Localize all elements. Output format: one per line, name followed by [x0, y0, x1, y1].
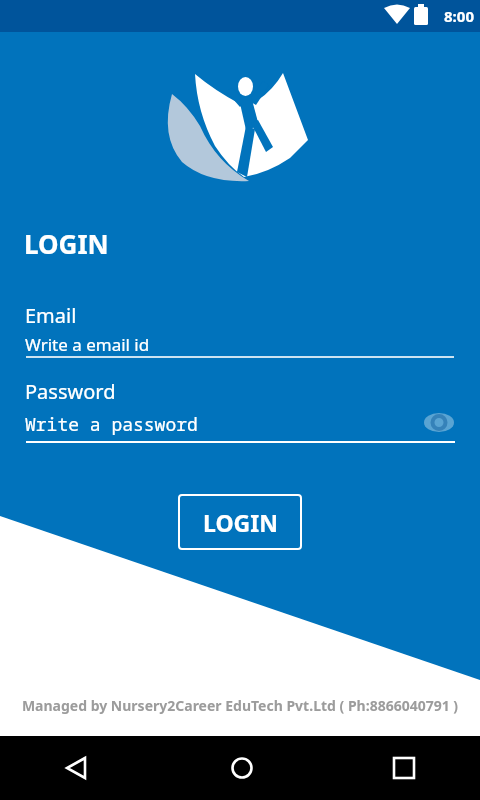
staticText: LOGIN — [24, 226, 109, 261]
staticText: Write a email id — [25, 333, 150, 356]
staticText: 8:00 — [444, 6, 474, 26]
staticText: LOGIN — [203, 507, 278, 538]
button[interactable]: Write a email id — [25, 333, 454, 361]
button[interactable] — [422, 408, 458, 436]
staticText: Email — [25, 302, 77, 329]
button[interactable]: LOGIN — [178, 494, 302, 550]
button[interactable] — [384, 748, 424, 788]
staticText: Password — [25, 378, 116, 405]
staticText: Write a password — [25, 412, 198, 437]
button[interactable] — [222, 748, 262, 788]
staticText: Managed by Nursery2Career EduTech Pvt.Lt… — [0, 696, 480, 715]
button[interactable] — [56, 748, 96, 788]
button[interactable]: Write a password — [25, 412, 415, 442]
